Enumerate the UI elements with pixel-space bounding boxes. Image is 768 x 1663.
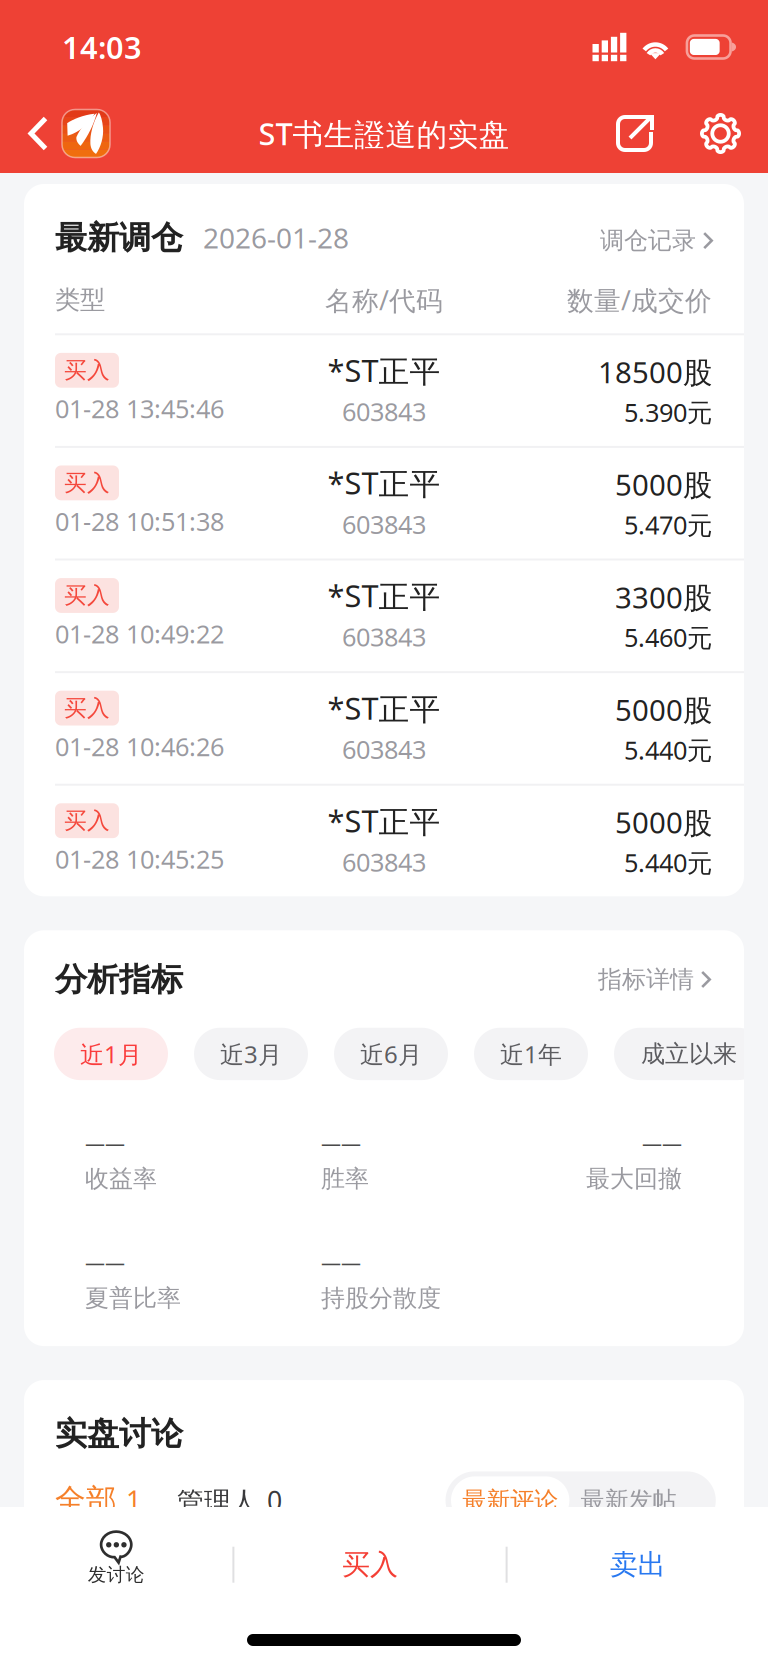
staticText: 01-28 10:49:22 <box>55 617 224 650</box>
button[interactable]: 近6月 <box>334 1028 448 1080</box>
staticText: 买入 <box>64 356 110 384</box>
staticText: 5.460元 <box>624 620 712 654</box>
staticText: 近1月 <box>80 1038 142 1070</box>
staticText: —— <box>321 1249 361 1276</box>
staticText: 买入 <box>64 469 110 497</box>
staticText: 5.390元 <box>624 395 712 429</box>
button[interactable]: 最新发帖 <box>569 1476 688 1524</box>
staticText: 收益率 <box>85 1164 157 1194</box>
staticText: —— <box>85 1249 125 1276</box>
staticText: *ST正平 <box>327 800 440 841</box>
staticText: 14:03 <box>62 27 142 67</box>
button[interactable]: 卖出 <box>508 1507 768 1600</box>
staticText: 管理人 <box>177 1485 258 1518</box>
staticText: *ST正平 <box>327 575 440 616</box>
staticText: 5000股 <box>615 690 712 729</box>
staticText: 发讨论 <box>88 1563 145 1586</box>
staticText: 最新评论 <box>462 1486 558 1515</box>
staticText: 5000股 <box>615 465 712 504</box>
button[interactable]: 近1月 <box>54 1028 168 1080</box>
staticText: 分析指标 <box>55 960 183 999</box>
button[interactable]: Back <box>0 94 120 173</box>
staticText: 买入 <box>342 1547 398 1582</box>
staticText: 603843 <box>342 845 426 879</box>
staticText: 指标详情 <box>598 965 694 994</box>
staticText: 603843 <box>342 620 426 653</box>
staticText: 类型 <box>55 284 105 315</box>
button[interactable]: 指标详情 <box>598 965 711 994</box>
staticText: 调仓记录 <box>600 226 696 255</box>
button[interactable]: Share <box>600 94 690 173</box>
staticText: 603843 <box>342 395 426 428</box>
staticText: 18500股 <box>598 352 712 391</box>
staticText: 2026-01-28 <box>203 219 349 256</box>
staticText: 卖出 <box>610 1547 666 1582</box>
button[interactable]: 发讨论 <box>0 1507 232 1611</box>
button[interactable]: *ST正平 <box>24 786 744 896</box>
staticText: 5.440元 <box>624 733 712 767</box>
staticText: 0 <box>267 1483 282 1518</box>
staticText: 1 <box>126 1482 141 1518</box>
staticText: ST书生證道的实盘 <box>258 113 509 154</box>
staticText: 数量/成交价 <box>567 282 712 318</box>
button[interactable]: *ST正平 <box>24 448 744 558</box>
staticText: 买入 <box>64 694 110 722</box>
staticText: 最新调仓 <box>55 218 183 258</box>
staticText: 近6月 <box>360 1038 422 1070</box>
staticText: 近3月 <box>220 1038 282 1070</box>
button[interactable]: *ST正平 <box>24 560 744 671</box>
button[interactable]: *ST正平 <box>24 673 744 784</box>
button[interactable]: 管理人 <box>141 1471 282 1529</box>
button[interactable]: 买入 <box>234 1507 506 1600</box>
button[interactable]: 全部 <box>55 1471 141 1529</box>
staticText: 最新发帖 <box>581 1486 677 1515</box>
button[interactable]: 成立以来 <box>614 1028 764 1080</box>
staticText: —— <box>321 1130 361 1156</box>
staticText: 持股分散度 <box>321 1284 441 1313</box>
staticText: —— <box>642 1130 682 1156</box>
staticText: 夏普比率 <box>85 1284 181 1313</box>
staticText: 实盘讨论 <box>55 1414 183 1453</box>
staticText: 全部 <box>55 1482 117 1519</box>
staticText: 603843 <box>342 507 426 541</box>
staticText: 603843 <box>342 732 426 766</box>
staticText: *ST正平 <box>327 688 440 728</box>
staticText: 成立以来 <box>641 1039 737 1069</box>
staticText: 01-28 13:45:46 <box>55 392 224 425</box>
staticText: 3300股 <box>615 577 712 616</box>
button[interactable]: 最新评论 <box>451 1476 569 1524</box>
button[interactable]: 近3月 <box>194 1028 308 1080</box>
staticText: 5.470元 <box>624 508 712 541</box>
staticText: —— <box>85 1130 125 1156</box>
staticText: 5000股 <box>615 803 712 842</box>
staticText: 5.440元 <box>624 846 712 879</box>
staticText: 胜率 <box>321 1164 369 1194</box>
button[interactable]: *ST正平 <box>24 335 744 446</box>
staticText: *ST正平 <box>327 350 440 391</box>
staticText: *ST正平 <box>327 462 440 503</box>
staticText: 近1年 <box>500 1038 562 1070</box>
button[interactable]: 调仓记录 <box>600 226 713 255</box>
staticText: 买入 <box>64 807 110 835</box>
staticText: 名称/代码 <box>325 282 443 318</box>
staticText: 01-28 10:46:26 <box>55 729 224 763</box>
staticText: 01-28 10:51:38 <box>55 504 224 538</box>
staticText: 01-28 10:45:25 <box>55 842 224 876</box>
staticText: 最大回撤 <box>586 1164 682 1194</box>
button[interactable]: 近1年 <box>474 1028 588 1080</box>
staticText: 买入 <box>64 582 110 609</box>
button[interactable]: Settings <box>690 94 768 173</box>
